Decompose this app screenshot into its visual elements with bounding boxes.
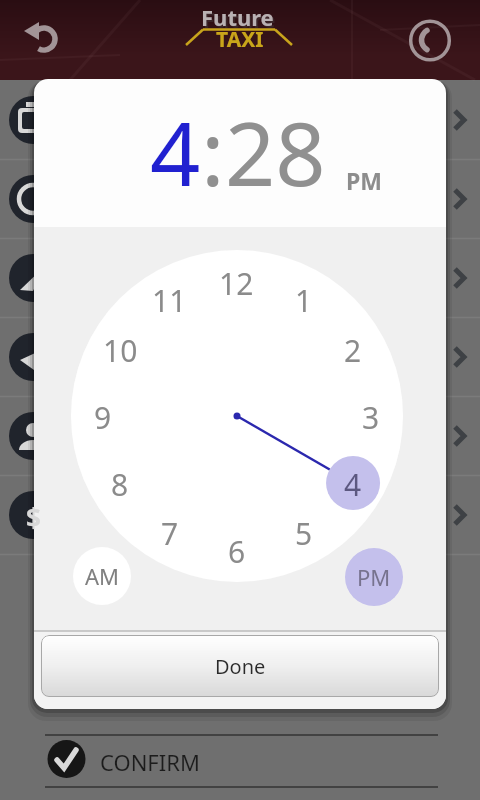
staticText: 4: [150, 92, 201, 212]
staticText: CONFIRM: [100, 747, 200, 777]
button[interactable]: [0, 238, 480, 317]
staticText: 10: [103, 330, 138, 368]
staticText: TAXI: [216, 25, 264, 49]
button[interactable]: [0, 396, 480, 475]
staticText: 11: [152, 280, 187, 318]
button[interactable]: [0, 475, 480, 554]
staticText: 12: [219, 263, 254, 301]
staticText: Future: [203, 4, 276, 34]
staticText: PM: [357, 562, 391, 592]
staticText: Done: [215, 653, 266, 680]
staticText: 5: [295, 513, 313, 551]
button[interactable]: [0, 317, 480, 396]
button[interactable]: [0, 159, 480, 238]
staticText: 8: [111, 464, 129, 502]
staticText: Future: [201, 2, 274, 32]
staticText: 4: [344, 464, 362, 502]
staticText: 7: [161, 513, 179, 551]
staticText: 2: [344, 330, 362, 368]
staticText: 3: [362, 397, 380, 435]
button[interactable]: [0, 80, 480, 159]
staticText: PM: [346, 165, 382, 196]
staticText: $: [26, 500, 41, 530]
staticText: 1: [295, 280, 313, 318]
button[interactable]: [14, 10, 72, 68]
staticText: AM: [85, 561, 120, 591]
staticText: :: [201, 92, 225, 212]
button[interactable]: [402, 12, 458, 68]
button[interactable]: Done: [41, 635, 439, 697]
button[interactable]: PM: [345, 548, 403, 606]
button[interactable]: [45, 736, 438, 786]
staticText: 28: [225, 92, 326, 212]
staticText: 6: [228, 531, 246, 569]
staticText: 9: [94, 397, 112, 435]
button[interactable]: AM: [73, 547, 131, 605]
